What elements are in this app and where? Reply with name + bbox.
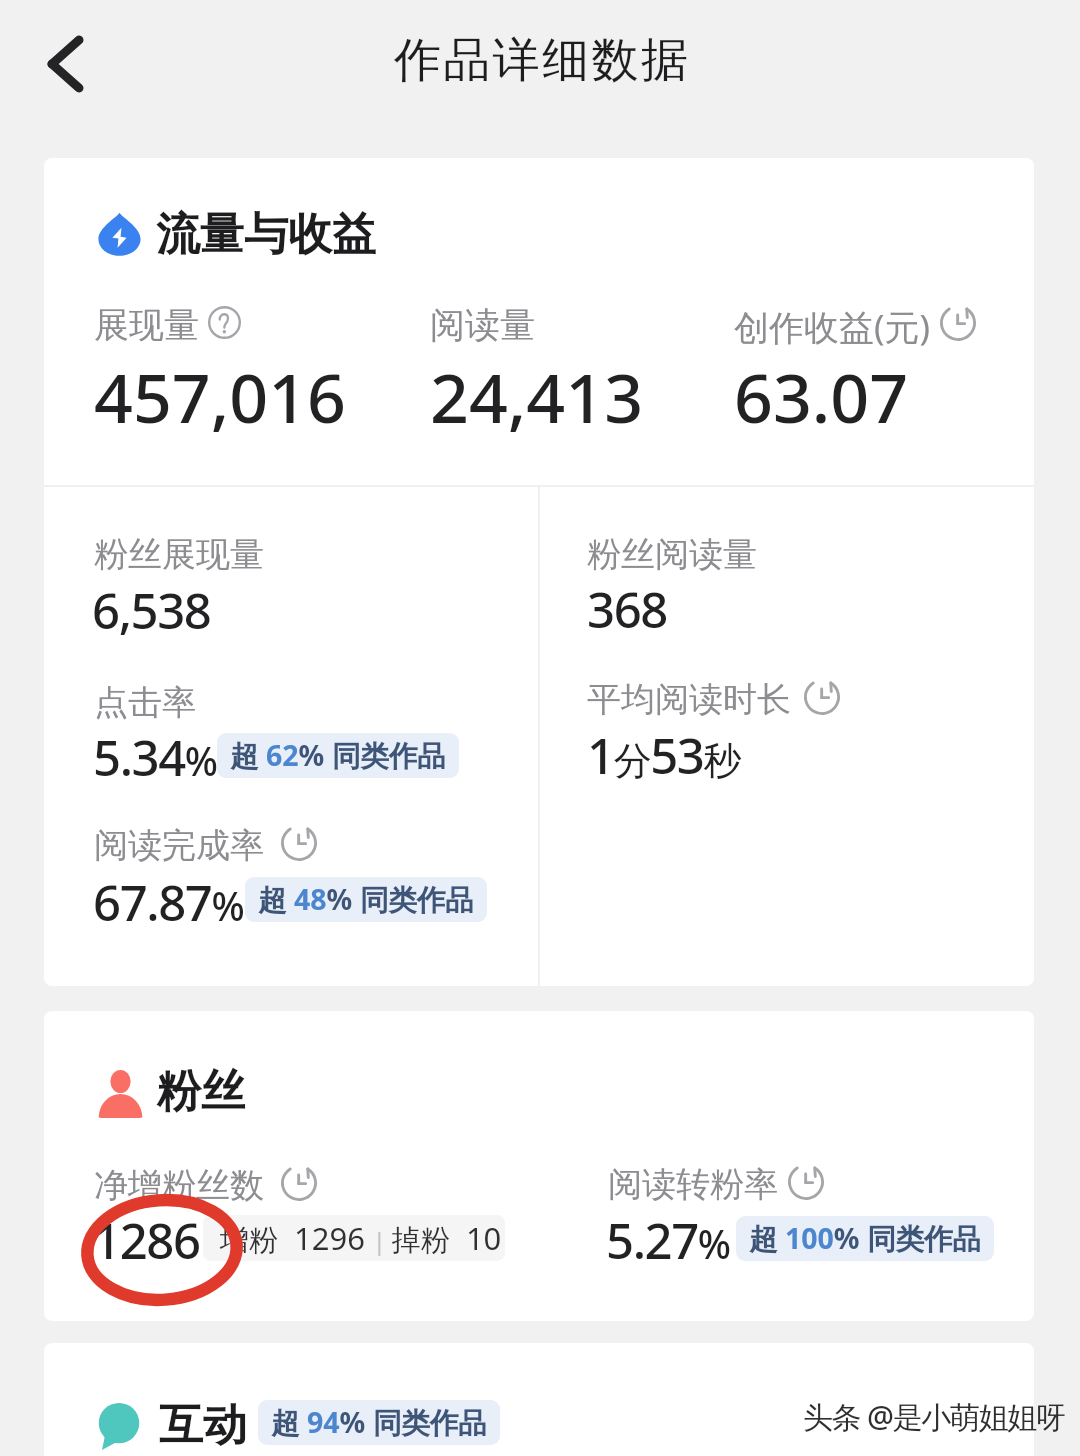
staticText: 展现量	[94, 303, 199, 347]
button[interactable]: 净增粉丝数历史	[281, 1165, 317, 1201]
staticText: 作品详细数据	[394, 31, 691, 90]
button[interactable]: 展现量说明	[208, 306, 241, 339]
button[interactable]: 流量与收益	[44, 158, 1034, 986]
staticText: 平均阅读时长	[587, 678, 791, 721]
staticText: 粉丝	[157, 1064, 245, 1119]
staticText: 67.87%	[93, 869, 244, 936]
staticText: 超 48% 同类作品	[258, 880, 474, 919]
button[interactable]: 阅读完成率历史	[281, 825, 317, 861]
staticText: 点击率	[94, 681, 196, 724]
staticText: 超 100% 同类作品	[749, 1219, 981, 1258]
staticText: 增粉 1296 | 掉粉 10	[220, 1217, 502, 1259]
button[interactable]: 互动	[44, 1343, 1034, 1456]
staticText: 流量与收益	[156, 207, 376, 262]
staticText: 阅读转粉率	[608, 1163, 778, 1206]
button[interactable]: 平均阅读时长历史	[804, 679, 840, 715]
button[interactable]: Back	[24, 24, 108, 104]
staticText: 超 62% 同类作品	[230, 736, 446, 775]
staticText: 超 94% 同类作品	[271, 1403, 487, 1442]
staticText: 粉丝阅读量	[587, 533, 757, 576]
staticText: 5.27%	[606, 1207, 730, 1274]
staticText: 457,016	[94, 350, 346, 443]
staticText: 净增粉丝数	[94, 1164, 264, 1207]
button[interactable]: 粉丝	[44, 1011, 1034, 1321]
staticText: 5.34%	[93, 724, 217, 791]
staticText: 1分53秒	[587, 722, 741, 789]
staticText: 368	[587, 576, 667, 643]
staticText: 63.07	[734, 350, 909, 443]
staticText: 互动	[159, 1398, 247, 1453]
staticText: 粉丝展现量	[94, 533, 264, 576]
staticText: 6,538	[92, 577, 211, 644]
staticText: 阅读量	[430, 303, 535, 347]
staticText: 24,413	[430, 350, 644, 443]
staticText: 阅读完成率	[94, 824, 264, 867]
button[interactable]: 创作收益历史	[940, 305, 976, 341]
staticText: 头条 @是小萌姐姐呀	[803, 1396, 1065, 1437]
staticText: 1286	[93, 1207, 200, 1274]
button[interactable]: 阅读转粉率历史	[788, 1164, 824, 1200]
staticText: 创作收益(元)	[734, 303, 931, 351]
